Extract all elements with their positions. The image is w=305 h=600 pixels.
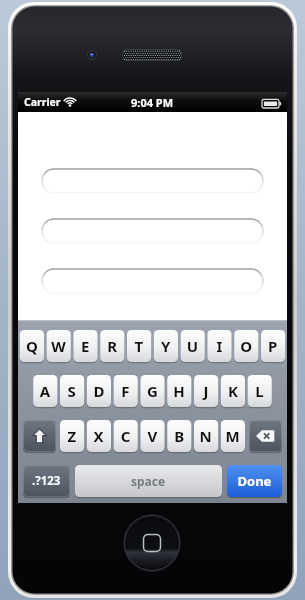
button[interactable]: U — [181, 330, 205, 362]
button[interactable]: E — [73, 330, 97, 362]
button[interactable]: M — [221, 420, 245, 452]
button[interactable]: N — [194, 420, 218, 452]
button[interactable]: .?123 — [23, 465, 70, 497]
button[interactable]: P — [261, 330, 285, 362]
button[interactable]: Text field — [42, 269, 263, 293]
button[interactable]: Shift — [23, 420, 56, 452]
button[interactable]: R — [100, 330, 124, 362]
button[interactable]: L — [248, 375, 272, 407]
button[interactable]: Q — [20, 330, 44, 362]
button[interactable]: B — [167, 420, 191, 452]
button[interactable]: O — [234, 330, 258, 362]
button[interactable]: C — [114, 420, 138, 452]
button[interactable]: Home — [124, 515, 180, 571]
button[interactable]: Text field — [42, 169, 263, 193]
button[interactable]: X — [87, 420, 111, 452]
button[interactable]: S — [60, 375, 84, 407]
button[interactable]: Text field — [42, 219, 263, 243]
button[interactable]: Z — [60, 420, 84, 452]
button[interactable]: I — [207, 330, 231, 362]
button[interactable]: K — [221, 375, 245, 407]
button[interactable]: space — [75, 465, 232, 497]
button[interactable]: D — [87, 375, 111, 407]
button[interactable]: G — [140, 375, 164, 407]
button[interactable]: A — [33, 375, 57, 407]
button[interactable]: V — [140, 420, 164, 452]
button[interactable]: Backspace — [249, 420, 282, 452]
button[interactable]: Y — [154, 330, 178, 362]
button[interactable]: T — [127, 330, 151, 362]
button[interactable]: F — [114, 375, 138, 407]
button[interactable]: W — [47, 330, 71, 362]
button[interactable]: J — [194, 375, 218, 407]
button[interactable]: H — [167, 375, 191, 407]
button[interactable]: Done — [227, 465, 282, 497]
